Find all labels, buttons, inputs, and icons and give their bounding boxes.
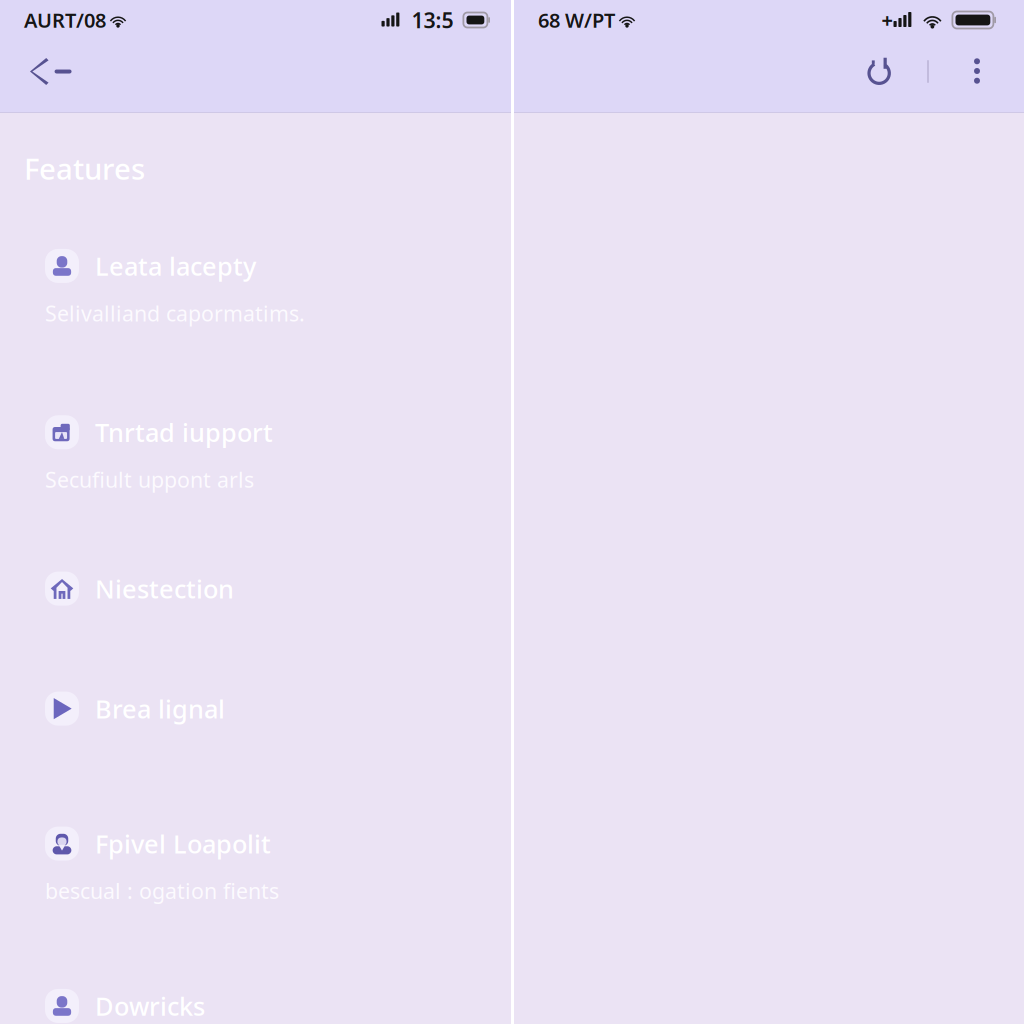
staticText: Dowricks bbox=[95, 989, 205, 1023]
staticText: Niestection bbox=[95, 572, 234, 605]
staticText: Fpivel Loapolit bbox=[95, 827, 271, 860]
staticText: Features bbox=[24, 149, 145, 188]
staticText: 13:5 bbox=[411, 6, 453, 34]
staticText: Brea lignal bbox=[95, 692, 225, 725]
staticText: bescual : ogation fients bbox=[45, 877, 279, 905]
button[interactable]: Niestection bbox=[0, 572, 511, 606]
button[interactable]: More options bbox=[948, 52, 1006, 100]
button[interactable]: Tnrtad iupport bbox=[0, 415, 511, 494]
button[interactable]: Back bbox=[0, 48, 92, 104]
button[interactable]: Refresh bbox=[852, 51, 908, 101]
staticText: 68 W/PT bbox=[538, 7, 615, 33]
staticText: Secufiult uppont arls bbox=[45, 465, 254, 494]
button[interactable]: Leata lacepty bbox=[0, 249, 511, 327]
staticText: Tnrtad iupport bbox=[95, 415, 273, 449]
button[interactable]: Fpivel Loapolit bbox=[0, 827, 511, 905]
staticText: Selivalliand capormatims. bbox=[45, 299, 305, 327]
button[interactable]: Brea lignal bbox=[0, 692, 511, 726]
staticText: AURT/08 bbox=[24, 7, 106, 33]
staticText: + bbox=[881, 7, 892, 33]
button[interactable]: Dowricks bbox=[0, 989, 511, 1023]
staticText: Leata lacepty bbox=[95, 249, 256, 283]
